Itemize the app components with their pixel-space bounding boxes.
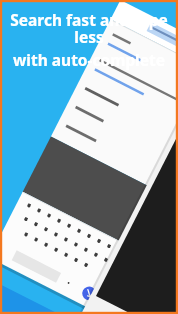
staticText: Search fast and type less xyxy=(6,9,172,48)
button[interactable]: Send xyxy=(26,274,44,292)
staticText: with auto-complete xyxy=(13,49,165,70)
